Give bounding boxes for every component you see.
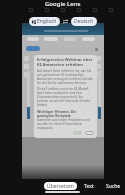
staticText: Auf dieser Seite erfahren Sie, wie Sie m… bbox=[37, 69, 93, 85]
button[interactable]: Tool 5 bbox=[109, 8, 113, 12]
staticText: stammen aus realen Projekten und wurden … bbox=[37, 118, 93, 130]
button[interactable]: Swap languages bbox=[60, 17, 71, 26]
button[interactable]: Suche bbox=[103, 182, 124, 190]
button[interactable]: Tool 4 bbox=[93, 8, 97, 12]
button[interactable]: Accept bbox=[73, 131, 82, 135]
button[interactable]: Tool 2 bbox=[61, 8, 65, 12]
staticText: Text bbox=[84, 183, 94, 190]
button[interactable]: Englisch bbox=[29, 17, 60, 26]
staticText: Diese Funktion nutzt ein KI-Modell, das … bbox=[37, 87, 93, 107]
staticText: Erfolgreiches Webinar über KI-Antworten … bbox=[37, 57, 93, 67]
button[interactable]: Tool 0 bbox=[29, 8, 33, 12]
staticText: Wichtiger Hinweis: Die gezeigten Beispie… bbox=[37, 109, 93, 118]
staticText: Englisch bbox=[37, 18, 57, 25]
button[interactable]: Tool 3 bbox=[77, 8, 81, 12]
staticText: Übersetzen bbox=[47, 183, 74, 190]
staticText: Google Lens bbox=[45, 0, 81, 8]
staticText: Deutsch bbox=[74, 18, 94, 25]
button[interactable]: Text bbox=[81, 182, 97, 190]
button[interactable]: Deutsch bbox=[71, 17, 97, 26]
button[interactable]: Übersetzen bbox=[44, 182, 77, 190]
button[interactable]: Tool 1 bbox=[45, 8, 49, 12]
staticText: Suche bbox=[106, 183, 121, 190]
button[interactable]: Dismiss bbox=[85, 131, 94, 135]
